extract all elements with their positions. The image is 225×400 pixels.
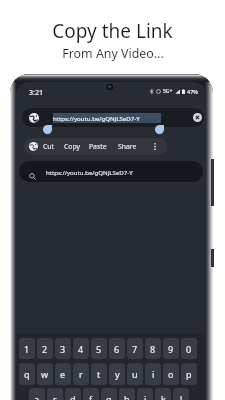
staticText: 8 — [150, 343, 156, 355]
staticText: j — [144, 393, 147, 400]
button[interactable]: f — [83, 388, 99, 400]
staticText: o — [168, 368, 174, 380]
button[interactable]: 5 — [91, 338, 107, 359]
staticText: a — [34, 393, 40, 400]
button[interactable]: 2 — [37, 338, 53, 359]
button[interactable]: Clear — [193, 113, 202, 122]
button[interactable]: u — [127, 363, 143, 385]
button[interactable]: l — [173, 388, 189, 400]
button[interactable]: 0 — [181, 338, 197, 359]
button[interactable]: t — [91, 363, 107, 385]
staticText: 4 — [78, 343, 84, 355]
button[interactable]: k — [155, 388, 171, 400]
button[interactable]: https://youtu.be/gQNjLSeD7-Y — [19, 161, 203, 182]
staticText: g — [106, 393, 112, 400]
staticText: e — [60, 368, 66, 380]
button[interactable]: a — [29, 388, 45, 400]
button[interactable]: 1 — [19, 338, 35, 359]
staticText: https://youtu.be/gQNjLSeD7-Y — [46, 168, 133, 176]
staticText: https://youtu.be/gQNjLSeD7-Y — [53, 114, 140, 122]
button[interactable]: 4 — [73, 338, 89, 359]
button[interactable]: 7 — [127, 338, 143, 359]
staticText: k — [161, 393, 166, 400]
staticText: u — [132, 368, 138, 380]
staticText: s — [53, 393, 58, 400]
button[interactable]: Paste — [89, 138, 107, 155]
button[interactable]: h — [119, 388, 135, 400]
staticText: 3 — [60, 343, 66, 355]
button[interactable]: Copy — [64, 138, 80, 155]
staticText: y — [115, 368, 120, 380]
staticText: Paste — [89, 142, 107, 151]
button[interactable]: g — [101, 388, 117, 400]
button[interactable]: 3 — [55, 338, 71, 359]
staticText: q — [24, 368, 30, 380]
staticText: Cut — [43, 142, 54, 151]
button[interactable]: 9 — [163, 338, 179, 359]
staticText: 0 — [186, 343, 192, 355]
staticText: 47% — [187, 88, 198, 95]
staticText: p — [186, 368, 192, 380]
staticText: Share — [118, 142, 137, 151]
staticText: 3:21 — [29, 88, 43, 98]
button[interactable]: Share — [118, 138, 137, 155]
button[interactable]: e — [55, 363, 71, 385]
staticText: From Any Video... — [62, 45, 164, 62]
staticText: w — [41, 368, 49, 380]
button[interactable]: More options — [149, 138, 160, 155]
button[interactable]: w — [37, 363, 53, 385]
staticText: Copy — [64, 142, 80, 151]
staticText: h — [124, 393, 130, 400]
staticText: 5 — [96, 343, 102, 355]
button[interactable]: i — [145, 363, 161, 385]
button[interactable]: https://youtu.be/gQNjLSeD7-Y — [22, 108, 204, 127]
staticText: 2 — [42, 343, 48, 355]
button[interactable]: y — [109, 363, 125, 385]
staticText: t — [97, 368, 101, 380]
staticText: 5G+ — [163, 88, 173, 95]
staticText: i — [152, 368, 155, 380]
staticText: 1 — [24, 343, 30, 355]
staticText: 6 — [114, 343, 120, 355]
button[interactable]: o — [163, 363, 179, 385]
staticText: f — [89, 393, 93, 400]
button[interactable]: Cut — [43, 138, 54, 155]
button[interactable]: q — [19, 363, 35, 385]
staticText: 9 — [168, 343, 174, 355]
button[interactable]: r — [73, 363, 89, 385]
staticText: 7 — [132, 343, 138, 355]
button[interactable]: d — [65, 388, 81, 400]
button[interactable]: j — [137, 388, 153, 400]
staticText: d — [70, 393, 76, 400]
button[interactable]: 8 — [145, 338, 161, 359]
button[interactable]: p — [181, 363, 197, 385]
staticText: l — [180, 393, 183, 400]
staticText: r — [79, 368, 83, 380]
button[interactable]: s — [47, 388, 63, 400]
button[interactable]: 6 — [109, 338, 125, 359]
staticText: Copy the Link — [52, 18, 173, 44]
